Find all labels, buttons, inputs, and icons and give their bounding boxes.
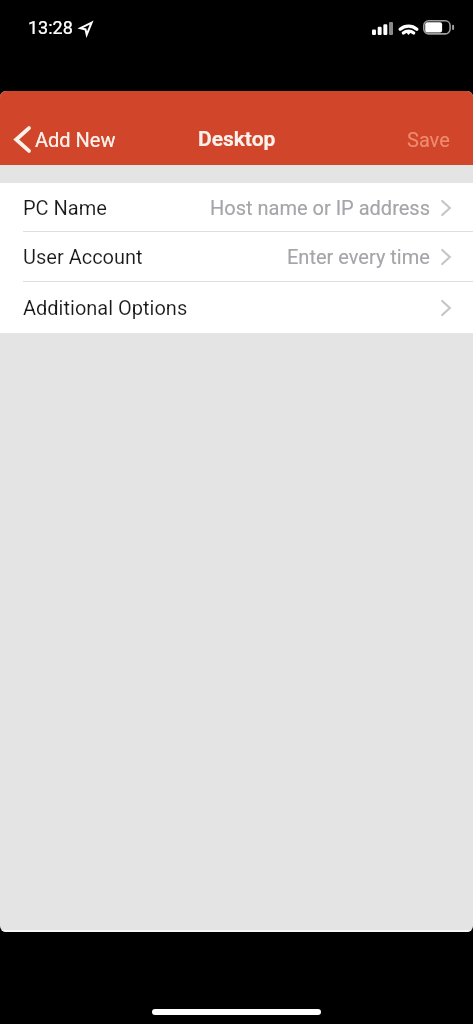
button[interactable]: Additional Options	[0, 282, 473, 333]
staticText: PC Name	[23, 196, 107, 219]
staticText: 13:28	[28, 17, 73, 38]
other: Home indicator	[152, 1009, 321, 1015]
staticText: Desktop	[198, 127, 276, 152]
staticText: Save	[407, 128, 450, 151]
button[interactable]: Save	[384, 120, 473, 159]
staticText: Add New	[35, 128, 116, 151]
button[interactable]: Back to Add New	[0, 120, 126, 159]
staticText: Host name or IP address	[210, 196, 430, 219]
staticText: Enter every time	[287, 245, 430, 268]
button[interactable]: PC Name	[0, 183, 473, 232]
button[interactable]: User Account	[0, 232, 473, 282]
staticText: User Account	[23, 245, 143, 268]
staticText: Additional Options	[23, 296, 188, 319]
